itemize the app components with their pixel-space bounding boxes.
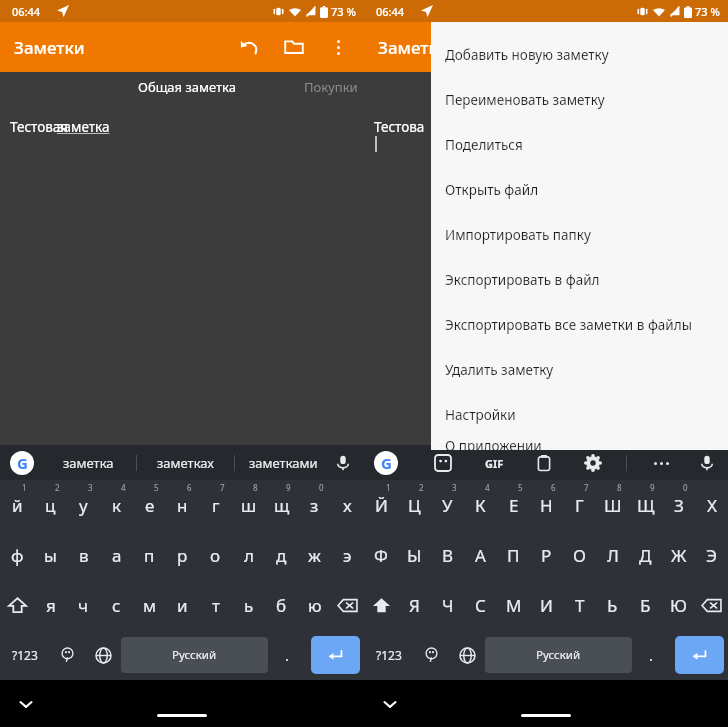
button[interactable]: . xyxy=(632,630,671,680)
button[interactable]: г xyxy=(199,480,232,530)
button[interactable]: д xyxy=(265,530,298,580)
button[interactable]: в xyxy=(67,530,100,580)
button[interactable]: м xyxy=(133,580,166,630)
button[interactable]: М xyxy=(497,580,530,630)
button[interactable]: П xyxy=(497,530,530,580)
button[interactable]: Й xyxy=(364,480,398,530)
button[interactable]: Open folder xyxy=(272,25,316,69)
button[interactable]: Voice input xyxy=(694,450,720,476)
button[interactable]: Г xyxy=(563,480,596,530)
button[interactable]: Покупки xyxy=(304,72,358,102)
button[interactable]: Импортировать папку xyxy=(431,212,728,257)
button[interactable]: Русский xyxy=(121,637,268,673)
button[interactable]: Х xyxy=(695,480,728,530)
button[interactable]: у xyxy=(67,480,100,530)
button[interactable]: Д xyxy=(629,530,662,580)
button[interactable]: л xyxy=(232,530,265,580)
button[interactable]: Н xyxy=(530,480,563,530)
button[interactable]: Change language xyxy=(449,630,485,680)
button[interactable]: Enter xyxy=(311,636,360,674)
button[interactable]: п xyxy=(133,530,166,580)
button[interactable]: Экспортировать в файл xyxy=(431,257,728,302)
button[interactable]: Shift xyxy=(364,580,398,630)
button[interactable]: ы xyxy=(34,530,67,580)
button[interactable]: Р xyxy=(530,530,563,580)
button[interactable]: В xyxy=(431,530,464,580)
button[interactable]: н xyxy=(166,480,199,530)
button[interactable]: А xyxy=(464,530,497,580)
button[interactable]: . xyxy=(268,630,307,680)
button[interactable]: заметка xyxy=(40,445,136,480)
button[interactable]: Voice input xyxy=(330,450,356,476)
button[interactable]: Ы xyxy=(398,530,431,580)
button[interactable]: У xyxy=(431,480,464,530)
button[interactable]: Undo xyxy=(228,25,272,69)
button[interactable]: Добавить новую заметку xyxy=(431,32,728,77)
button[interactable]: Э xyxy=(695,530,728,580)
button[interactable]: К xyxy=(464,480,497,530)
button[interactable]: Л xyxy=(596,530,629,580)
button[interactable]: Открыть файл xyxy=(431,167,728,212)
button[interactable]: Ж xyxy=(662,530,695,580)
button[interactable]: Русский xyxy=(485,637,632,673)
button[interactable]: заметками xyxy=(235,445,332,480)
button[interactable]: Т xyxy=(563,580,596,630)
button[interactable]: Настройки xyxy=(431,392,728,437)
button[interactable]: р xyxy=(166,530,199,580)
button[interactable]: Emoji xyxy=(49,630,85,680)
button[interactable]: Stickers xyxy=(428,448,458,478)
button[interactable]: Удалить заметку xyxy=(431,347,728,392)
button[interactable]: з xyxy=(298,480,331,530)
button[interactable]: Ч xyxy=(431,580,464,630)
button[interactable]: ж xyxy=(298,530,331,580)
button[interactable]: Переименовать заметку xyxy=(431,77,728,122)
button[interactable]: Emoji xyxy=(413,630,449,680)
button[interactable]: GIF xyxy=(477,446,511,480)
button[interactable]: И xyxy=(530,580,563,630)
button[interactable]: О приложении xyxy=(431,437,728,450)
button[interactable]: Ь xyxy=(596,580,629,630)
button[interactable]: о xyxy=(199,530,232,580)
button[interactable]: Ш xyxy=(596,480,629,530)
button[interactable]: Общая заметка xyxy=(434,72,668,102)
button[interactable]: Е xyxy=(497,480,530,530)
button[interactable]: с xyxy=(100,580,133,630)
button[interactable]: я xyxy=(34,580,67,630)
button[interactable]: ц xyxy=(34,480,67,530)
button[interactable]: Ц xyxy=(398,480,431,530)
button[interactable]: э xyxy=(331,530,364,580)
button[interactable]: ь xyxy=(232,580,265,630)
button[interactable]: Enter xyxy=(675,636,724,674)
button[interactable]: More options xyxy=(316,25,360,69)
button[interactable]: Щ xyxy=(629,480,662,530)
button[interactable]: а xyxy=(100,530,133,580)
button[interactable]: ф xyxy=(0,530,34,580)
button[interactable]: к xyxy=(100,480,133,530)
button[interactable]: Google xyxy=(10,451,34,475)
button[interactable]: т xyxy=(199,580,232,630)
button[interactable]: б xyxy=(265,580,298,630)
button[interactable]: Clipboard xyxy=(529,448,559,478)
button[interactable]: Change language xyxy=(85,630,121,680)
button[interactable]: заметках xyxy=(137,445,234,480)
button[interactable]: х xyxy=(331,480,364,530)
button[interactable]: ч xyxy=(67,580,100,630)
button[interactable]: Backspace xyxy=(331,580,364,630)
button[interactable]: Я xyxy=(398,580,431,630)
button[interactable]: и xyxy=(166,580,199,630)
button[interactable]: Общая заметка xyxy=(70,72,304,102)
button[interactable]: Экспортировать все заметки в файлы xyxy=(431,302,728,347)
button[interactable]: ?123 xyxy=(364,630,413,680)
button[interactable]: ш xyxy=(232,480,265,530)
button[interactable]: Backspace xyxy=(695,580,728,630)
button[interactable]: З xyxy=(662,480,695,530)
button[interactable]: е xyxy=(133,480,166,530)
button[interactable]: Ф xyxy=(364,530,398,580)
button[interactable]: й xyxy=(0,480,34,530)
button[interactable]: More xyxy=(646,448,676,478)
button[interactable]: ?123 xyxy=(0,630,49,680)
button[interactable]: С xyxy=(464,580,497,630)
